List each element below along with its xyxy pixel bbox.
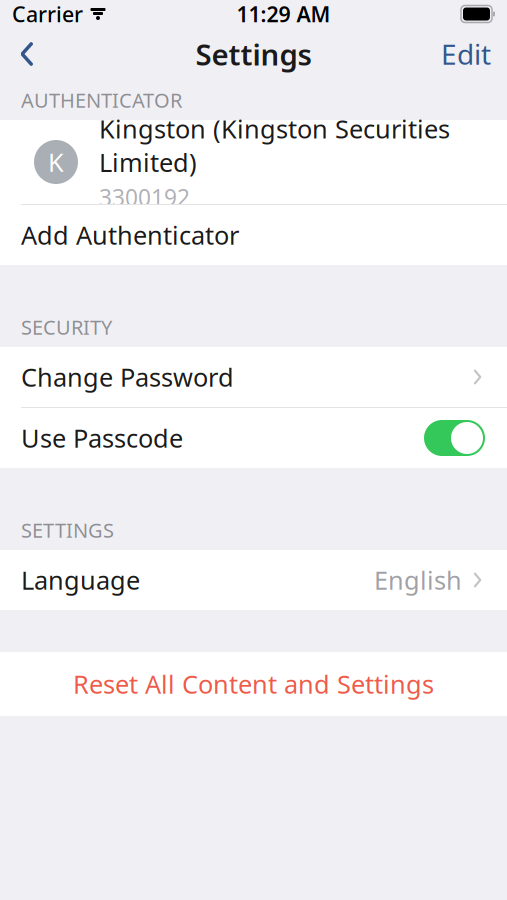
staticText: AUTHENTICATOR bbox=[21, 87, 182, 113]
button[interactable]: Back bbox=[0, 31, 54, 77]
staticText: Language bbox=[21, 563, 140, 597]
button[interactable]: Reset All Content and Settings bbox=[0, 652, 507, 716]
staticText: K bbox=[48, 145, 64, 179]
staticText: Edit bbox=[441, 35, 491, 73]
button[interactable]: Add Authenticator bbox=[0, 205, 507, 265]
button[interactable]: Use Passcode bbox=[0, 408, 507, 468]
staticText: 3300192 bbox=[99, 182, 190, 212]
button[interactable]: K bbox=[0, 120, 507, 204]
staticText: Use Passcode bbox=[21, 421, 183, 455]
staticText: English bbox=[374, 563, 462, 597]
button[interactable]: Edit bbox=[425, 31, 507, 77]
staticText: SETTINGS bbox=[21, 517, 114, 543]
staticText: Settings bbox=[195, 34, 311, 73]
staticText: Carrier bbox=[12, 0, 83, 28]
button[interactable]: Change Password bbox=[0, 347, 507, 407]
staticText: SECURITY bbox=[21, 314, 112, 340]
staticText: Reset All Content and Settings bbox=[73, 667, 434, 701]
staticText: Kingston (Kingston Securities Limited) bbox=[99, 112, 450, 179]
staticText: Change Password bbox=[21, 360, 234, 394]
staticText: 11:29 AM bbox=[236, 0, 330, 28]
button[interactable]: Language bbox=[0, 550, 507, 610]
staticText: Add Authenticator bbox=[21, 218, 239, 252]
